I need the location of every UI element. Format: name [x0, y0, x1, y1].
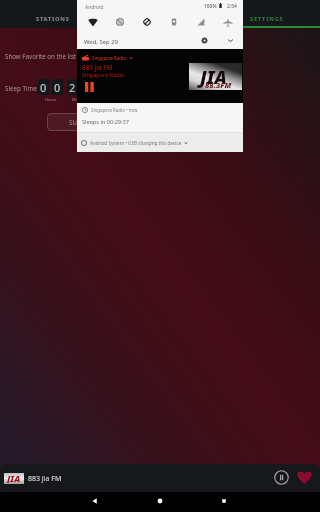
- staticText: Sleeps in 00:29:37: [82, 118, 129, 126]
- staticText: Android: [85, 4, 104, 11]
- staticText: 0: [40, 80, 47, 95]
- staticText: Sleep Time: [5, 84, 37, 92]
- button[interactable]: Pause: [81, 79, 97, 95]
- button[interactable]: Expand: [224, 34, 237, 47]
- staticText: JIA: [7, 472, 21, 483]
- staticText: Start: [69, 118, 84, 127]
- staticText: STATIONS: [36, 15, 70, 23]
- button[interactable]: Pause: [271, 467, 292, 488]
- button[interactable]: JIA: [77, 49, 243, 103]
- staticText: Wed, Sep 29: [84, 38, 118, 46]
- button[interactable]: Back: [86, 492, 104, 510]
- staticText: SETTINGS: [250, 15, 284, 23]
- staticText: Singapore Radio: [92, 55, 126, 61]
- staticText: 883 Jia FM: [82, 63, 113, 72]
- staticText: Android System • USB charging this devic…: [90, 140, 182, 146]
- button[interactable]: Battery saver: [160, 13, 187, 31]
- button[interactable]: FAVORITES: [106, 0, 213, 28]
- staticText: Singapore Radio: [82, 71, 125, 78]
- button[interactable]: Singapore Radio • now: [77, 103, 243, 132]
- button[interactable]: Home: [151, 492, 169, 510]
- button[interactable]: Start: [47, 113, 106, 131]
- button[interactable]: JIA: [0, 464, 320, 492]
- button[interactable]: Recents: [215, 492, 233, 510]
- staticText: Show Favorite on the list: [5, 52, 77, 60]
- button[interactable]: Do not disturb: [106, 13, 133, 31]
- button[interactable]: Settings: [198, 34, 211, 47]
- staticText: FAVORITES: [141, 15, 179, 23]
- staticText: 100%: [204, 3, 217, 10]
- staticText: 2: [69, 80, 76, 95]
- button[interactable]: Show Favorite on the list: [0, 46, 320, 66]
- button[interactable]: STATIONS: [0, 0, 106, 28]
- button[interactable]: Mobile data: [187, 13, 214, 31]
- button[interactable]: Favorite: [294, 467, 315, 488]
- staticText: 0: [54, 80, 61, 95]
- staticText: Hours: [45, 97, 57, 102]
- button[interactable]: Wi-Fi: [80, 13, 106, 31]
- staticText: Minutes: [72, 97, 87, 102]
- button[interactable]: Auto rotate: [133, 13, 160, 31]
- button[interactable]: Android System • USB charging this devic…: [77, 133, 243, 152]
- staticText: 883 Jia FM: [28, 474, 62, 484]
- staticText: 88.3FM: [205, 80, 232, 90]
- button[interactable]: Airplane mode: [214, 13, 241, 31]
- staticText: JIA: [200, 65, 227, 90]
- staticText: 9: [82, 80, 89, 95]
- staticText: 2:54: [227, 3, 237, 10]
- button[interactable]: SETTINGS: [213, 0, 320, 28]
- staticText: Singapore Radio • now: [91, 107, 138, 113]
